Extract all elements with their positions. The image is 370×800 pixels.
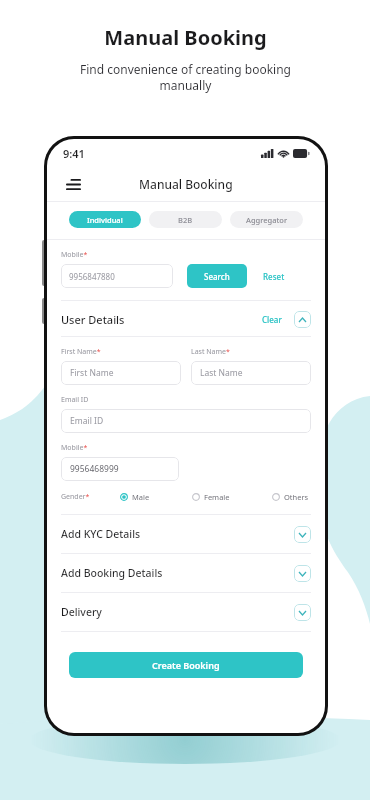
staticText: Last Name <box>200 367 243 379</box>
staticText: Male <box>132 492 150 502</box>
button[interactable]: Expand Delivery <box>294 604 311 621</box>
staticText: Add KYC Details <box>61 527 141 541</box>
button[interactable]: B2B <box>149 211 222 228</box>
staticText: Last Name* <box>191 347 230 357</box>
button[interactable]: Expand Add Booking Details <box>294 565 311 582</box>
staticText: Others <box>284 492 309 502</box>
staticText: 9956468999 <box>70 463 119 475</box>
staticText: Add Booking Details <box>61 566 163 580</box>
staticText: 9956847880 <box>69 271 115 282</box>
staticText: First Name* <box>61 347 101 357</box>
staticText: Search <box>204 271 230 282</box>
button[interactable]: Delivery <box>61 593 311 631</box>
staticText: Mobile* <box>61 443 88 453</box>
staticText: Mobile* <box>61 250 88 260</box>
staticText: First Name <box>70 367 114 379</box>
staticText: Email ID <box>61 395 89 405</box>
button[interactable]: Add Booking Details <box>61 554 311 592</box>
button[interactable]: Expand Add KYC Details <box>294 526 311 543</box>
button[interactable]: Create Booking <box>69 652 303 678</box>
staticText: Aggregator <box>246 215 288 225</box>
staticText: Email ID <box>70 415 104 427</box>
button[interactable]: Male <box>118 490 152 504</box>
staticText: Delivery <box>61 605 102 619</box>
button[interactable]: Clear <box>259 311 285 328</box>
button[interactable]: Aggregator <box>230 211 303 228</box>
staticText: Reset <box>263 271 285 282</box>
staticText: Manual Booking <box>139 176 233 192</box>
staticText: B2B <box>178 215 193 225</box>
staticText: Gender* <box>61 492 90 502</box>
button[interactable]: Add KYC Details <box>61 515 311 553</box>
button[interactable]: 9956468999 <box>61 457 179 481</box>
staticText: Create Booking <box>152 659 220 671</box>
button[interactable]: Others <box>270 490 311 504</box>
staticText: Female <box>204 492 230 502</box>
staticText: Find convenience of creating booking man… <box>80 61 291 94</box>
button[interactable]: Reset <box>261 269 287 284</box>
button[interactable]: Search <box>187 264 247 288</box>
button[interactable]: Last Name <box>191 361 311 385</box>
button[interactable]: Email ID <box>61 409 311 433</box>
staticText: Clear <box>262 314 282 325</box>
staticText: Individual <box>87 215 123 225</box>
button[interactable]: Individual <box>69 211 141 228</box>
button[interactable]: First Name <box>61 361 181 385</box>
staticText: User Details <box>61 312 125 327</box>
button[interactable]: Menu <box>61 172 85 196</box>
staticText: 9:41 <box>63 146 85 161</box>
button[interactable]: Collapse User Details <box>294 311 311 328</box>
staticText: Manual Booking <box>104 24 267 51</box>
button[interactable]: Female <box>190 490 232 504</box>
button[interactable]: 9956847880 <box>61 264 173 288</box>
